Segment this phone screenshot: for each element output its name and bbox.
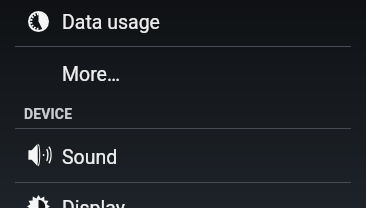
button[interactable]: Display	[0, 183, 366, 208]
staticText: Display	[62, 197, 125, 208]
staticText: Sound	[62, 146, 118, 169]
button[interactable]: Data usage	[0, 0, 366, 47]
button[interactable]: Sound	[0, 128, 366, 182]
staticText: More…	[62, 63, 120, 86]
other: Data usage	[28, 11, 49, 32]
staticText: Data usage	[62, 11, 160, 34]
other: Display	[27, 195, 50, 208]
staticText: DEVICE	[24, 106, 73, 122]
other: Sound	[25, 143, 52, 167]
button[interactable]: More…	[0, 47, 366, 98]
